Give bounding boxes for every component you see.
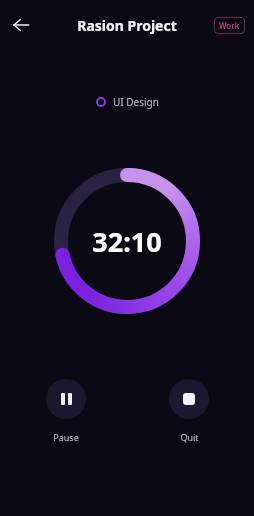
staticText: Pause [53, 431, 79, 443]
staticText: Quit [180, 431, 199, 443]
button[interactable]: Pause [36, 377, 96, 445]
staticText: UI Design [113, 95, 159, 109]
staticText: Rasion Project [77, 16, 177, 35]
button[interactable]: UI Design [92, 93, 163, 111]
staticText: 32:10 [92, 223, 162, 260]
staticText: Work [219, 20, 240, 31]
button[interactable]: Back [6, 10, 36, 40]
button[interactable]: Work [214, 17, 245, 34]
button[interactable]: Quit [159, 377, 219, 445]
